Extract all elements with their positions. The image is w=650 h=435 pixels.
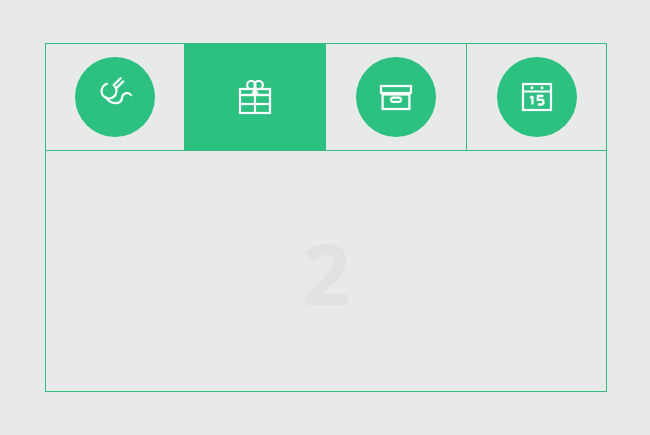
button[interactable]: Calendar: [467, 43, 607, 150]
staticText: 2: [302, 215, 351, 329]
button[interactable]: Archive: [326, 43, 466, 150]
button[interactable]: Power: [45, 43, 184, 150]
button[interactable]: Gifts: [185, 43, 325, 150]
